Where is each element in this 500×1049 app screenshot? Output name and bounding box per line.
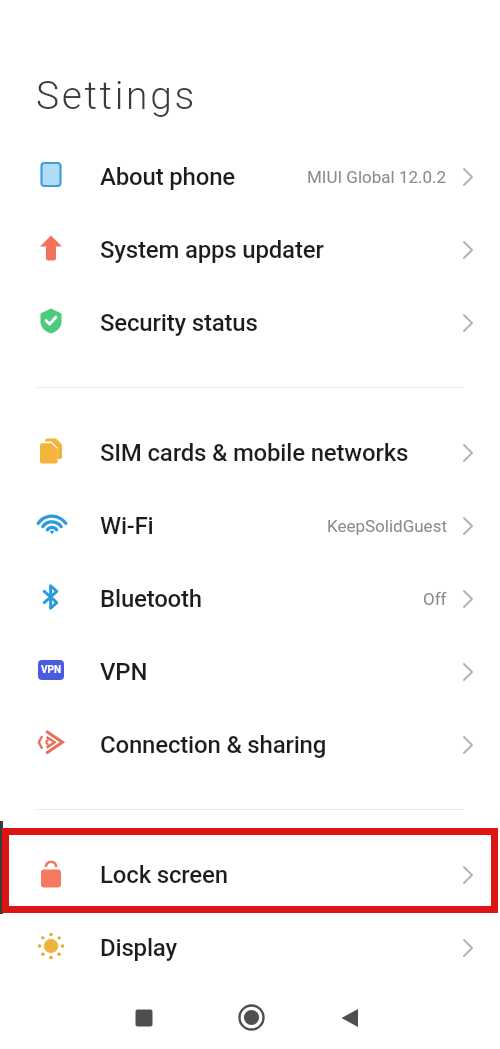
staticText: Connection & sharing: [100, 731, 327, 759]
staticText: KeepSolidGuest: [327, 516, 447, 536]
button[interactable]: [340, 1008, 360, 1028]
staticText: Off: [423, 589, 447, 609]
staticText: VPN: [41, 664, 62, 676]
button[interactable]: Connection & sharing: [0, 708, 500, 781]
staticText: About phone: [100, 163, 235, 191]
staticText: System apps updater: [100, 236, 324, 264]
button[interactable]: Display: [0, 911, 500, 984]
button[interactable]: [135, 1009, 153, 1027]
staticText: Security status: [100, 309, 258, 337]
staticText: Display: [100, 934, 177, 962]
button[interactable]: About phone: [0, 140, 500, 213]
button[interactable]: Wi-Fi: [0, 489, 500, 562]
staticText: Settings: [36, 73, 197, 119]
button[interactable]: Lock screen: [0, 838, 500, 911]
staticText: MIUI Global 12.0.2: [307, 167, 447, 187]
button[interactable]: SIM cards & mobile networks: [0, 416, 500, 489]
staticText: Wi-Fi: [100, 512, 154, 540]
button[interactable]: VPN: [0, 635, 500, 708]
button[interactable]: Bluetooth: [0, 562, 500, 635]
staticText: Lock screen: [100, 861, 228, 889]
staticText: Bluetooth: [100, 585, 202, 613]
button[interactable]: System apps updater: [0, 213, 500, 286]
button[interactable]: [238, 1004, 265, 1031]
staticText: VPN: [100, 658, 148, 686]
button[interactable]: Security status: [0, 286, 500, 359]
staticText: SIM cards & mobile networks: [100, 439, 409, 467]
